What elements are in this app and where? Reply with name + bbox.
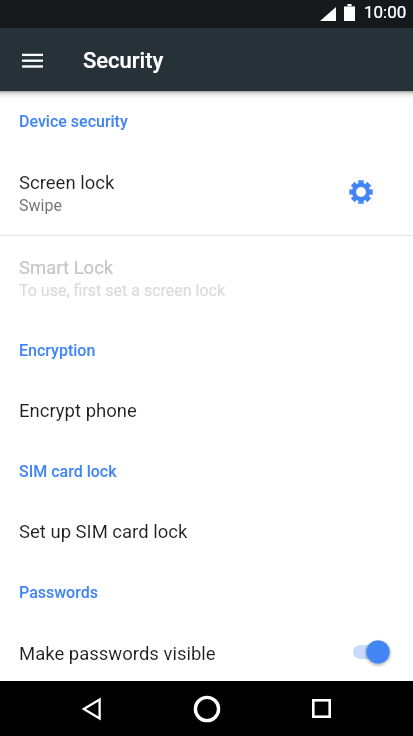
staticText: SIM card lock bbox=[19, 462, 117, 481]
button[interactable]: Screen lock settings bbox=[308, 151, 413, 235]
button[interactable]: Set up SIM card lock bbox=[0, 501, 413, 562]
staticText: Passwords bbox=[19, 583, 98, 602]
button[interactable]: Open navigation drawer bbox=[10, 38, 54, 82]
staticText: Screen lock bbox=[19, 172, 115, 194]
staticText: Swipe bbox=[19, 196, 62, 215]
staticText: Device security bbox=[19, 112, 128, 131]
staticText: 10:00 bbox=[364, 2, 407, 22]
button[interactable]: Back bbox=[63, 681, 120, 736]
button[interactable]: Recent apps bbox=[293, 681, 350, 736]
button[interactable]: Screen lock bbox=[0, 151, 413, 235]
staticText: To use, first set a screen lock bbox=[19, 281, 226, 300]
staticText: Security bbox=[83, 48, 164, 74]
staticText: Encryption bbox=[19, 341, 96, 360]
staticText: Make passwords visible bbox=[19, 643, 353, 665]
staticText: Encrypt phone bbox=[19, 400, 137, 422]
button[interactable]: Make passwords visible bbox=[0, 622, 413, 681]
staticText: Smart Lock bbox=[19, 257, 114, 279]
staticText: Set up SIM card lock bbox=[19, 521, 188, 543]
button[interactable]: Home bbox=[178, 681, 235, 736]
button[interactable]: Encrypt phone bbox=[0, 380, 413, 441]
